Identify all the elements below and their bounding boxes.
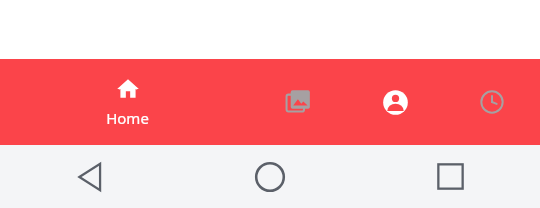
button[interactable]: Home (67, 59, 187, 145)
button[interactable]: Recent apps (360, 145, 540, 208)
button[interactable]: Gallery (251, 59, 347, 145)
button[interactable]: Back (0, 145, 180, 208)
button[interactable]: Profile (347, 59, 443, 145)
button[interactable]: Home (180, 145, 360, 208)
button[interactable]: History (444, 59, 540, 145)
staticText: Home (106, 108, 149, 128)
